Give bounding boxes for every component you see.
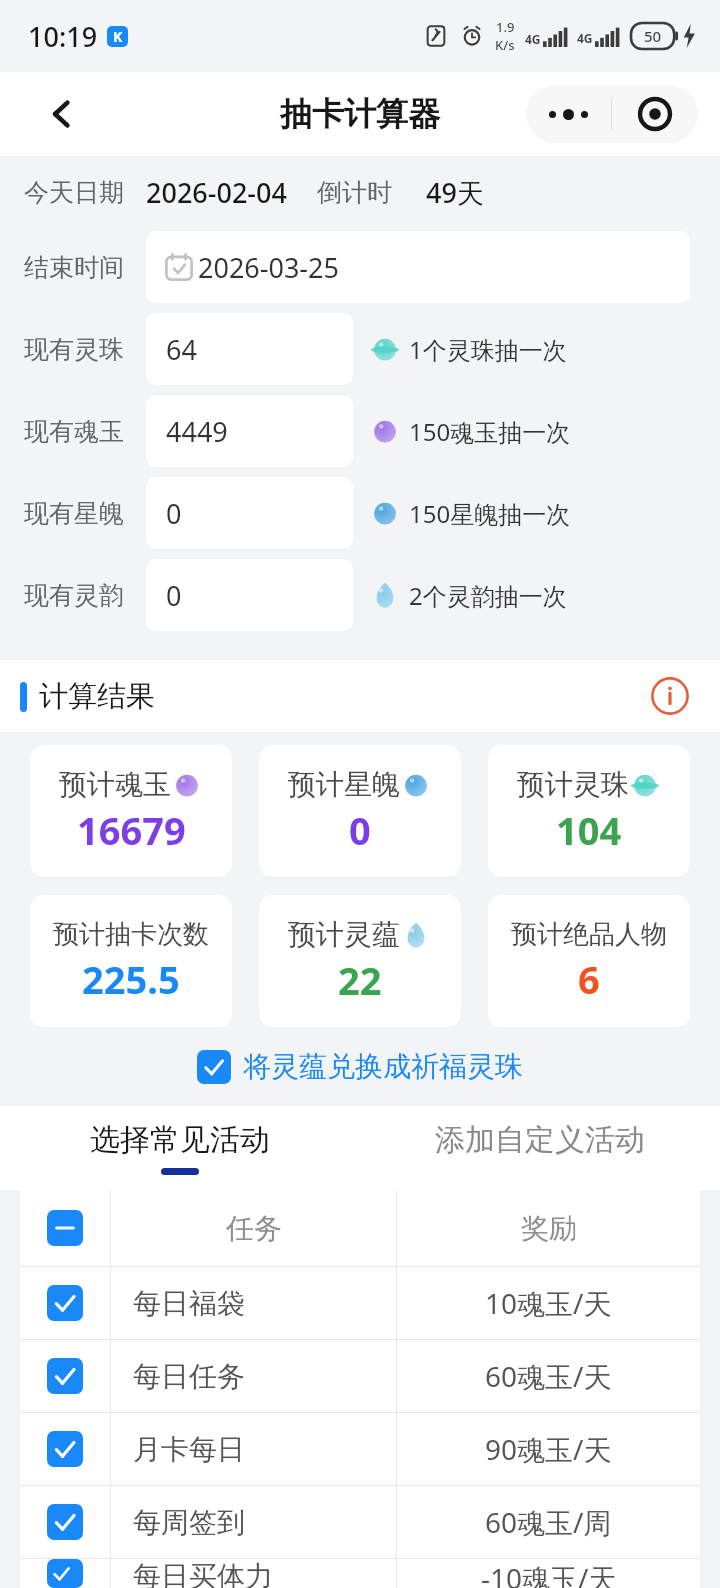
staticText: -10魂玉/天 <box>481 1559 617 1588</box>
button[interactable]: 每日买体力 <box>20 1559 700 1588</box>
button[interactable]: More <box>526 85 611 143</box>
staticText: K/s <box>495 36 515 54</box>
staticText: 22 <box>338 954 382 1006</box>
staticText: 现有星魄 <box>24 498 124 529</box>
staticText: 0 <box>166 495 182 532</box>
staticText: 每周签到 <box>133 1505 245 1540</box>
button[interactable]: 添加自定义活动 <box>360 1106 720 1190</box>
button[interactable]: 预计星魄 <box>259 745 461 877</box>
staticText: 预计魂玉 <box>59 767 171 802</box>
button[interactable]: Info <box>646 672 694 720</box>
staticText: 2个灵韵抽一次 <box>409 579 567 612</box>
staticText: 1.9 <box>496 18 515 36</box>
staticText: 计算结果 <box>39 678 155 715</box>
staticText: 预计星魄 <box>288 767 400 802</box>
staticText: 2026-03-25 <box>198 249 339 286</box>
staticText: 结束时间 <box>24 252 124 283</box>
staticText: 6 <box>578 953 600 1005</box>
staticText: 现有魂玉 <box>24 416 124 447</box>
staticText: 10魂玉/天 <box>485 1284 612 1322</box>
staticText: 1个灵珠抽一次 <box>409 333 567 366</box>
staticText: 选择常见活动 <box>90 1121 270 1159</box>
staticText: 4G <box>577 30 593 46</box>
button[interactable]: Close <box>612 85 698 143</box>
button[interactable]: Back <box>36 88 88 140</box>
staticText: 每日买体力 <box>133 1559 273 1588</box>
staticText: 225.5 <box>82 953 180 1005</box>
staticText: 4G <box>525 31 541 47</box>
button[interactable]: 将灵蕴兑换成祈福灵珠 <box>197 1049 523 1084</box>
staticText: 50 <box>644 26 662 46</box>
staticText: 4449 <box>166 413 228 450</box>
staticText: 49天 <box>426 174 484 211</box>
staticText: 抽卡计算器 <box>280 94 440 134</box>
staticText: 10:19 <box>28 18 98 55</box>
staticText: 90魂玉/天 <box>485 1430 612 1468</box>
staticText: 奖励 <box>521 1211 577 1246</box>
button[interactable]: 预计灵蕴 <box>259 895 461 1027</box>
staticText: 0 <box>166 577 182 614</box>
staticText: K <box>113 27 123 46</box>
button[interactable]: 月卡每日 <box>20 1413 700 1485</box>
button[interactable]: 选择常见活动 <box>0 1106 360 1190</box>
staticText: 现有灵韵 <box>24 580 124 611</box>
staticText: 0 <box>349 804 371 856</box>
button[interactable]: 0 <box>146 559 353 631</box>
staticText: 60魂玉/周 <box>485 1503 612 1541</box>
staticText: 任务 <box>226 1211 282 1246</box>
staticText: 每日任务 <box>133 1359 245 1394</box>
staticText: 2026-02-04 <box>146 174 287 211</box>
staticText: 64 <box>166 331 197 368</box>
button[interactable]: 每日福袋 <box>20 1267 700 1339</box>
button[interactable]: 0 <box>146 477 353 549</box>
button[interactable]: 预计抽卡次数 <box>30 895 232 1027</box>
button[interactable]: 每日任务 <box>20 1340 700 1412</box>
staticText: 150魂玉抽一次 <box>409 415 571 448</box>
staticText: 104 <box>556 804 622 856</box>
staticText: 现有灵珠 <box>24 334 124 365</box>
staticText: 预计绝品人物 <box>511 918 667 951</box>
staticText: 将灵蕴兑换成祈福灵珠 <box>243 1049 523 1084</box>
button[interactable]: 预计绝品人物 <box>488 895 690 1027</box>
staticText: 今天日期 <box>24 177 124 208</box>
staticText: 每日福袋 <box>133 1286 245 1321</box>
staticText: 16679 <box>77 804 186 856</box>
button[interactable] <box>20 1190 110 1266</box>
staticText: 月卡每日 <box>133 1432 245 1467</box>
button[interactable]: 预计灵珠 <box>488 745 690 877</box>
staticText: 预计灵珠 <box>517 767 629 802</box>
staticText: 150星魄抽一次 <box>409 497 571 530</box>
button[interactable]: 4449 <box>146 395 353 467</box>
staticText: 预计抽卡次数 <box>53 918 209 951</box>
staticText: 添加自定义活动 <box>435 1121 645 1159</box>
button[interactable]: 2026-03-25 <box>146 231 690 303</box>
button[interactable]: 每周签到 <box>20 1486 700 1558</box>
staticText: 60魂玉/天 <box>485 1357 612 1395</box>
staticText: 倒计时 <box>317 177 392 208</box>
button[interactable]: 64 <box>146 313 353 385</box>
button[interactable]: 预计魂玉 <box>30 745 232 877</box>
staticText: 预计灵蕴 <box>288 917 400 952</box>
